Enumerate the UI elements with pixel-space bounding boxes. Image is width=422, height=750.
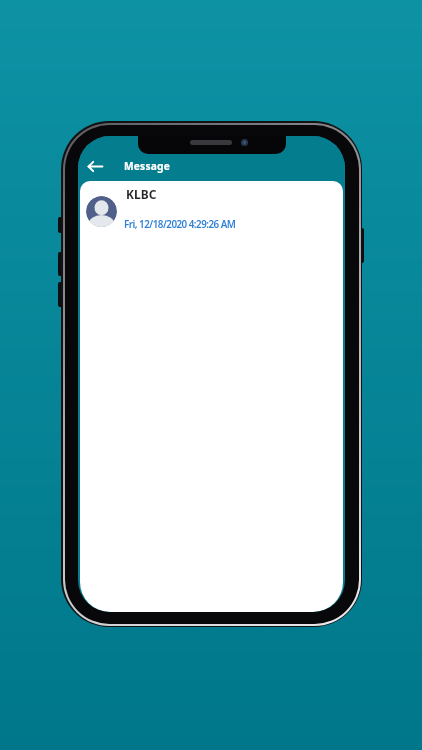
staticText: Fri, 12/18/2020 4:29:26 AM [124,218,236,231]
button[interactable]: KLBC [80,181,343,233]
staticText: Message [124,159,170,173]
button[interactable] [86,157,104,175]
staticText: KLBC [126,186,157,202]
